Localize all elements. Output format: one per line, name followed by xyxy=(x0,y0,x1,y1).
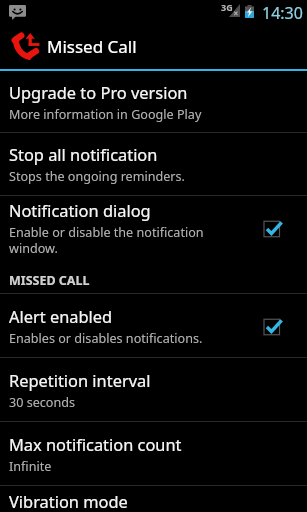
staticText: Repetition interval xyxy=(9,369,151,391)
button[interactable]: Vibration mode xyxy=(0,486,307,512)
staticText: 30 seconds xyxy=(9,394,76,411)
staticText: Alert enabled xyxy=(9,305,113,327)
staticText: Missed Call xyxy=(47,35,137,58)
button[interactable]: Missed call xyxy=(0,22,307,69)
other: Toggle xyxy=(264,316,285,336)
staticText: Infinite xyxy=(9,458,52,475)
staticText: Notification dialog xyxy=(9,199,151,221)
staticText: Max notification count xyxy=(9,433,182,455)
staticText: Upgrade to Pro version xyxy=(9,81,188,103)
button[interactable]: Alert enabled xyxy=(0,294,307,357)
button[interactable]: Repetition interval xyxy=(0,358,307,421)
other: Toggle xyxy=(264,218,285,238)
other: Missed call xyxy=(12,32,42,59)
button[interactable]: Notification dialog xyxy=(0,196,307,259)
other: Battery charging xyxy=(245,5,254,18)
other: No signal xyxy=(229,4,240,17)
staticText: Enable or disable the notification windo… xyxy=(9,224,204,256)
staticText: Enables or disables notifications. xyxy=(9,330,203,347)
button[interactable]: Stop all notification xyxy=(0,133,307,195)
staticText: 3G xyxy=(221,1,233,13)
button[interactable]: Max notification count xyxy=(0,422,307,485)
staticText: Stop all notification xyxy=(9,143,158,165)
other: New message xyxy=(9,5,26,20)
button[interactable]: Upgrade to Pro version xyxy=(0,71,307,132)
staticText: More information in Google Play xyxy=(9,106,202,123)
staticText: MISSED CALL xyxy=(9,272,90,289)
staticText: 14:30 xyxy=(262,2,303,24)
staticText: Vibration mode xyxy=(9,490,128,512)
staticText: Stops the ongoing reminders. xyxy=(9,168,185,185)
